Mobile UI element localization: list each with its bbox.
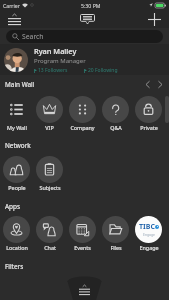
button[interactable]: Next [155, 79, 166, 90]
staticText: Engage [139, 244, 159, 251]
button[interactable]: 13 Followers [34, 67, 68, 74]
button[interactable]: Events [66, 216, 99, 251]
staticText: 13 Followers [38, 67, 68, 74]
button[interactable]: People [0, 156, 33, 191]
button[interactable]: Menu [5, 10, 23, 28]
staticText: 5:30 PM [81, 2, 101, 9]
staticText: 20 Following [88, 67, 118, 74]
staticText: Program Manager [34, 57, 86, 65]
button[interactable] [165, 96, 169, 131]
button[interactable]: Company [66, 96, 99, 131]
staticText: Engage [143, 232, 155, 237]
button[interactable]: Files [99, 216, 132, 251]
staticText: Search [22, 32, 44, 41]
button[interactable]: My Wall [0, 96, 33, 131]
staticText: Network [5, 141, 31, 150]
button[interactable]: TIBC [132, 216, 165, 251]
staticText: Apps [5, 202, 21, 211]
button[interactable]: Open menu [67, 276, 102, 300]
staticText: TIBC [139, 222, 155, 232]
button[interactable]: Messages [78, 10, 96, 28]
staticText: VIP [45, 124, 54, 131]
button[interactable]: Search [6, 30, 163, 43]
staticText: Filters [5, 262, 24, 271]
staticText: Main Wall [5, 80, 35, 89]
button[interactable]: Subjects [33, 156, 66, 191]
button[interactable]: Previous [142, 79, 153, 90]
staticText: Private [140, 124, 158, 131]
button[interactable]: Q&A [99, 96, 132, 131]
staticText: Events [74, 244, 91, 251]
button[interactable]: Private [132, 96, 165, 131]
staticText: Location [6, 244, 28, 251]
button[interactable]: Location [0, 216, 33, 251]
button[interactable]: Chat [33, 216, 66, 251]
staticText: My Wall [7, 124, 27, 131]
button[interactable]: VIP [33, 96, 66, 131]
staticText: Ryan Malley [34, 46, 77, 56]
staticText: Chat [44, 244, 56, 251]
staticText: People [8, 184, 26, 191]
staticText: Files [110, 244, 122, 251]
staticText: Subjects [39, 184, 61, 191]
button[interactable]: Ryan Malley [0, 44, 169, 75]
button[interactable]: 20 Following [84, 67, 118, 74]
staticText: Carrier [3, 2, 20, 9]
staticText: Company [70, 124, 95, 131]
button[interactable]: Add [145, 10, 163, 28]
staticText: Q&A [110, 124, 122, 131]
